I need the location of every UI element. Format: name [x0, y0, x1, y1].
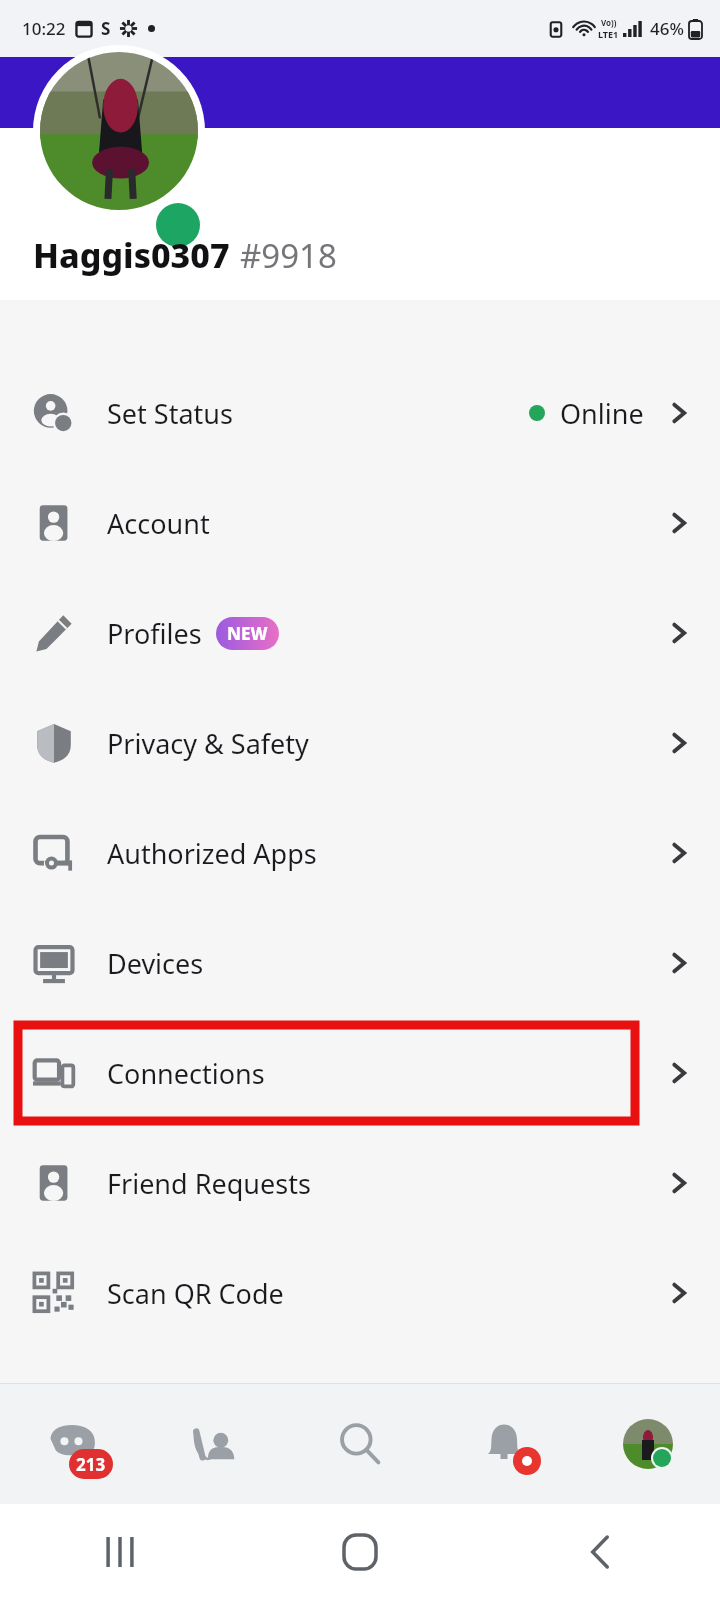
- staticText: Haggis0307: [33, 232, 230, 278]
- staticText: Vo)): [601, 17, 617, 28]
- button[interactable]: Authorized Apps: [0, 798, 720, 908]
- button[interactable]: Scan QR Code: [0, 1238, 720, 1348]
- staticText: Devices: [107, 945, 204, 982]
- staticText: Authorized Apps: [107, 835, 317, 872]
- staticText: Privacy & Safety: [107, 725, 309, 762]
- button[interactable]: Profiles: [0, 578, 720, 688]
- button[interactable]: Privacy & Safety: [0, 688, 720, 798]
- staticText: Account: [107, 505, 210, 542]
- button[interactable]: Friend Requests: [0, 1128, 720, 1238]
- button[interactable]: Connections: [0, 1018, 720, 1128]
- button[interactable]: Devices: [0, 908, 720, 1018]
- staticText: Connections: [107, 1055, 265, 1092]
- button[interactable]: Set Status: [0, 358, 720, 468]
- button[interactable]: Servers: [0, 1384, 144, 1504]
- staticText: Set Status: [107, 395, 233, 432]
- staticText: 46%: [650, 17, 684, 40]
- button[interactable]: Notifications: [432, 1384, 576, 1504]
- button[interactable]: Friends: [144, 1384, 288, 1504]
- staticText: Online: [560, 395, 644, 432]
- button[interactable]: Search: [288, 1384, 432, 1504]
- staticText: Profiles: [107, 615, 202, 652]
- button[interactable]: Account: [0, 468, 720, 578]
- staticText: 213: [76, 1453, 106, 1476]
- staticText: 10:22: [22, 17, 66, 40]
- staticText: #9918: [240, 233, 337, 278]
- button[interactable]: You: [576, 1384, 720, 1504]
- staticText: NEW: [227, 622, 268, 645]
- staticText: Scan QR Code: [107, 1275, 284, 1312]
- staticText: Friend Requests: [107, 1165, 311, 1202]
- staticText: LTE1: [598, 28, 619, 40]
- staticText: S: [101, 17, 111, 40]
